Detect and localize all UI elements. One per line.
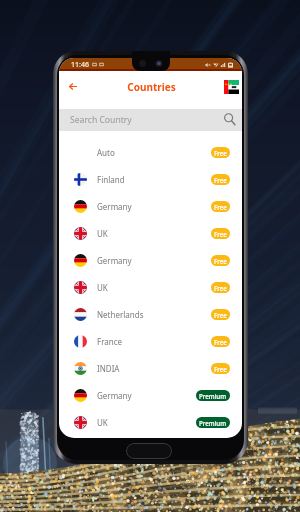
button[interactable]: Premium [196,390,230,401]
staticText: Free [214,203,227,211]
staticText: Free [214,365,227,373]
button[interactable]: Premium [196,417,230,428]
button[interactable]: UK [59,274,242,301]
staticText: Free [214,176,227,184]
button[interactable]: Germany [59,247,242,274]
staticText: Germany [97,390,132,401]
staticText: Auto [97,147,115,158]
button[interactable]: Auto [59,139,242,166]
staticText: Netherlands [97,309,144,320]
staticText: INDIA [97,363,120,374]
staticText: Free [214,149,227,157]
button[interactable]: INDIA [59,355,242,382]
button[interactable]: Finland [59,166,242,193]
button[interactable]: UK [59,409,242,436]
button[interactable]: France [59,328,242,355]
staticText: Finland [97,174,125,185]
button[interactable]: Germany [59,382,242,409]
staticText: UK [97,417,108,428]
staticText: Free [214,338,227,346]
button[interactable]: Back [64,78,81,95]
button[interactable]: Free [211,174,230,185]
button[interactable]: Free [211,201,230,212]
button[interactable]: Free [211,228,230,239]
button[interactable]: Germany [59,193,242,220]
button[interactable]: Free [211,363,230,374]
staticText: France [97,336,123,347]
staticText: Free [214,284,227,292]
button[interactable]: UK [59,220,242,247]
button[interactable]: Free [211,309,230,320]
button[interactable]: Free [211,336,230,347]
button[interactable]: Search Country [59,109,242,131]
staticText: Free [214,257,227,265]
staticText: Premium [199,392,227,400]
staticText: UK [97,228,108,239]
button[interactable]: Netherlands [59,301,242,328]
staticText: Countries [127,80,176,94]
button[interactable]: Free [211,255,230,266]
staticText: Free [214,311,227,319]
staticText: Germany [97,255,132,266]
staticText: Germany [97,201,132,212]
staticText: 11:46 [71,60,89,70]
button[interactable]: Selected country United Arab Emirates [222,78,240,96]
staticText: Free [214,230,227,238]
button[interactable]: Free [211,282,230,293]
button[interactable]: Free [211,147,230,158]
staticText: Premium [199,419,227,427]
staticText: Search Country [70,114,132,126]
staticText: UK [97,282,108,293]
